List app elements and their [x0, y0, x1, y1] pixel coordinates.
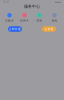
- button[interactable]: 信用卡: [17, 13, 32, 22]
- button[interactable]: 记账本: [2, 13, 17, 22]
- staticText: 9:41: [3, 0, 10, 4]
- staticText: 保险: [51, 19, 57, 22]
- button[interactable]: 理财: [32, 13, 47, 22]
- staticText: ▪▪▪: [55, 0, 61, 3]
- button[interactable]: 去查看: [42, 26, 56, 32]
- button[interactable]: 保险: [47, 13, 62, 22]
- staticText: 理财: [36, 19, 42, 22]
- staticText: 立即开通: [9, 27, 21, 31]
- staticText: 去查看: [44, 27, 53, 31]
- staticText: 记账本: [5, 19, 14, 22]
- button[interactable]: 立即开通: [8, 26, 22, 32]
- staticText: 信用卡: [20, 19, 29, 22]
- staticText: 服务中心: [24, 4, 40, 9]
